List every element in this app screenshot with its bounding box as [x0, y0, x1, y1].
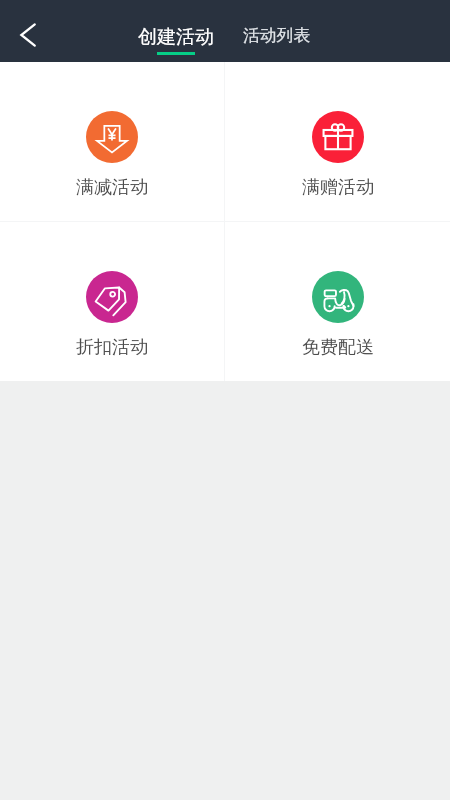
button[interactable]: 活动列表 — [243, 0, 311, 62]
staticText: 折扣活动 — [76, 336, 148, 359]
button[interactable]: 满赠活动 — [225, 62, 450, 221]
staticText: 活动列表 — [243, 25, 311, 46]
button[interactable]: 免费配送 — [225, 222, 450, 381]
button[interactable]: 满减活动 — [0, 62, 224, 221]
staticText: 满减活动 — [76, 176, 148, 199]
staticText: 免费配送 — [302, 336, 374, 359]
button[interactable]: Back — [0, 7, 56, 63]
button[interactable]: 创建活动 — [138, 0, 214, 62]
button[interactable]: 折扣活动 — [0, 222, 224, 381]
staticText: 满赠活动 — [302, 176, 374, 199]
staticText: 创建活动 — [138, 25, 214, 49]
